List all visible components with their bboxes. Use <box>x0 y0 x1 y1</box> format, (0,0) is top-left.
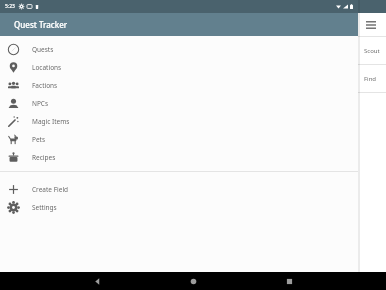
staticText: 5:23 <box>5 3 15 10</box>
staticText: NPCs <box>32 99 49 108</box>
button[interactable]: Back <box>49 272 145 290</box>
button[interactable]: Recent apps <box>241 272 337 290</box>
staticText: Settings <box>32 203 57 212</box>
staticText: Locations <box>32 63 62 72</box>
button[interactable]: Scout the <box>0 37 386 64</box>
staticText: Find Unc <box>364 75 386 83</box>
button[interactable]: Open navigation drawer <box>362 16 379 33</box>
button[interactable]: Settings <box>0 198 358 216</box>
button[interactable]: Magic Items <box>0 112 358 130</box>
button[interactable]: Pets <box>0 130 358 148</box>
staticText: Quests <box>32 45 54 54</box>
button[interactable]: Quests <box>0 40 358 58</box>
staticText: Factions <box>32 81 58 90</box>
button[interactable]: Locations <box>0 58 358 76</box>
staticText: Create Field <box>32 185 69 194</box>
staticText: Pets <box>32 135 46 144</box>
button[interactable]: Recipes <box>0 148 358 166</box>
button[interactable]: Find Unc <box>0 65 386 92</box>
button[interactable]: Create Field <box>0 180 358 198</box>
button[interactable]: Factions <box>0 76 358 94</box>
staticText: Scout the <box>364 47 386 55</box>
staticText: Magic Items <box>32 117 70 126</box>
staticText: Quest Tracker <box>14 19 68 30</box>
staticText: Recipes <box>32 153 56 162</box>
button[interactable]: Home <box>145 272 241 290</box>
button[interactable]: NPCs <box>0 94 358 112</box>
